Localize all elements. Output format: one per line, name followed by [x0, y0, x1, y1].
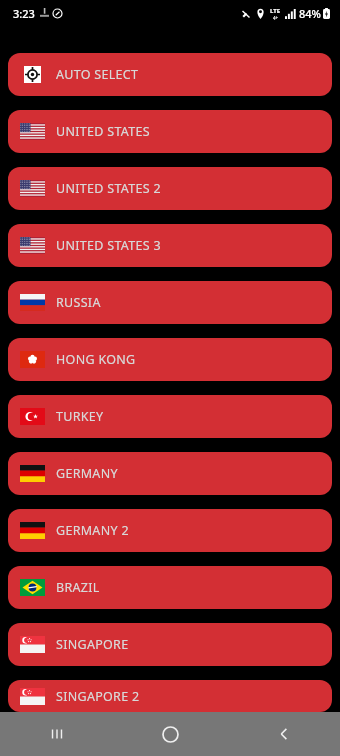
- button[interactable]: TURKEY: [8, 395, 332, 438]
- staticText: LTE: [270, 7, 281, 15]
- button[interactable]: GERMANY 2: [8, 509, 332, 552]
- staticText: UNITED STATES 3: [56, 237, 161, 254]
- staticText: BRAZIL: [56, 579, 100, 596]
- button[interactable]: AUTO SELECT: [8, 53, 332, 96]
- staticText: RUSSIA: [56, 294, 101, 311]
- button[interactable]: Recent apps: [0, 712, 114, 756]
- staticText: GERMANY 2: [56, 522, 129, 539]
- staticText: UNITED STATES: [56, 123, 150, 140]
- button[interactable]: HONG KONG: [8, 338, 332, 381]
- button[interactable]: BRAZIL: [8, 566, 332, 609]
- staticText: HONG KONG: [56, 351, 136, 368]
- staticText: TURKEY: [56, 408, 104, 425]
- button[interactable]: SINGAPORE: [8, 623, 332, 666]
- staticText: SINGAPORE: [56, 636, 129, 653]
- button[interactable]: UNITED STATES: [8, 110, 332, 153]
- staticText: UNITED STATES 2: [56, 180, 161, 197]
- staticText: GERMANY: [56, 465, 118, 482]
- button[interactable]: UNITED STATES 2: [8, 167, 332, 210]
- button[interactable]: Back: [227, 712, 340, 756]
- button[interactable]: Home: [114, 712, 227, 756]
- staticText: SINGAPORE 2: [56, 688, 140, 705]
- staticText: 3:23: [13, 6, 35, 21]
- button[interactable]: UNITED STATES 3: [8, 224, 332, 267]
- staticText: 84%: [299, 6, 321, 21]
- button[interactable]: RUSSIA: [8, 281, 332, 324]
- button[interactable]: SINGAPORE 2: [8, 680, 332, 712]
- button[interactable]: GERMANY: [8, 452, 332, 495]
- staticText: AUTO SELECT: [56, 66, 139, 83]
- staticText: 4+: [273, 15, 279, 21]
